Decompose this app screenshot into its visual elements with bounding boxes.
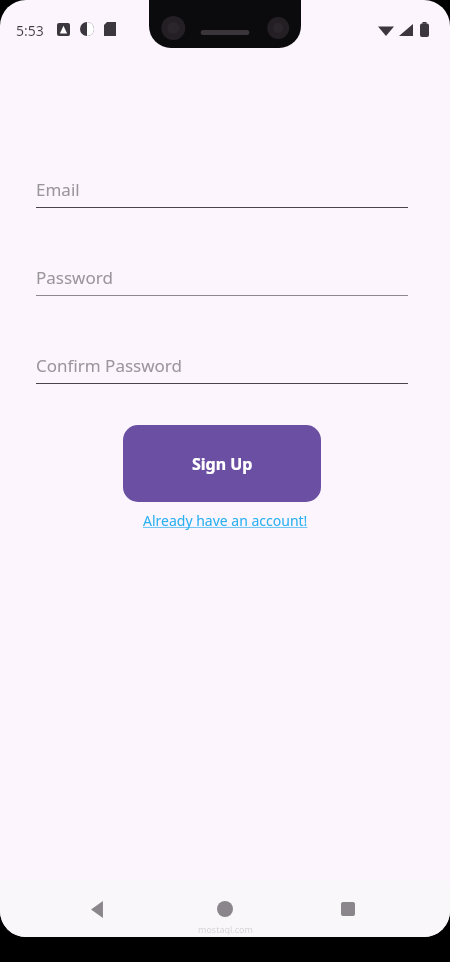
staticText: 5:53 — [16, 21, 44, 40]
button[interactable]: Already have an account! — [139, 509, 312, 532]
staticText: Email — [36, 178, 80, 201]
button[interactable]: Recent apps — [324, 885, 372, 933]
button[interactable]: Confirm Password — [36, 354, 408, 384]
staticText: mostaql.com — [198, 923, 253, 935]
staticText: Password — [36, 266, 113, 289]
button[interactable]: Sign Up — [123, 425, 321, 502]
staticText: Confirm Password — [36, 354, 182, 377]
button[interactable]: Email — [36, 178, 408, 208]
button[interactable]: Password — [36, 266, 408, 296]
button[interactable]: Home — [201, 885, 249, 933]
button[interactable]: Back — [73, 885, 121, 933]
staticText: Sign Up — [192, 453, 253, 475]
staticText: Already have an account! — [143, 511, 308, 530]
